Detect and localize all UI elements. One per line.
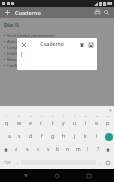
staticText: v [47,146,50,153]
button[interactable]: Lonsul de la semana [4,44,114,50]
button[interactable]: w [13,117,25,130]
staticText: 6 [63,114,65,117]
staticText: k [84,133,87,140]
button[interactable]: Recents [83,170,95,182]
button[interactable]: k [80,130,91,143]
staticText: ? [97,146,100,153]
button[interactable]: Add [3,8,12,17]
staticText: b [56,146,60,153]
button[interactable]: Emoji [103,157,113,168]
staticText: o [95,120,99,127]
button[interactable]: ?123 [1,157,14,168]
staticText: h [62,133,66,140]
staticText: Mostrar calendario [7,57,43,62]
button[interactable]: Delete [77,40,86,49]
button[interactable]: q [1,117,13,130]
button[interactable]: r [36,117,47,130]
staticText: j [74,133,76,140]
staticText: q [5,120,9,127]
staticText: n [66,146,70,153]
staticText: p [106,120,110,127]
staticText: m [76,146,81,153]
staticText: ?123 [4,161,11,165]
button[interactable]: s [14,130,25,143]
button[interactable]: p [102,117,113,130]
button[interactable]: Settings [109,109,112,112]
button[interactable]: g [47,130,58,143]
button[interactable]: ! [83,143,93,156]
staticText: Ambiente [7,39,26,44]
button[interactable]: h [58,130,69,143]
button[interactable]: f [36,130,47,143]
staticText: 5 [52,114,54,117]
button[interactable]: ? [93,143,103,156]
staticText: Vocé tambié permanente [7,33,55,38]
button[interactable]: Vocé tambié permanente [4,32,114,38]
staticText: w [17,120,21,127]
button[interactable]: o [91,117,102,130]
staticText: Cuaderno [40,41,64,48]
button[interactable]: Search [102,8,111,17]
staticText: 2 [18,114,20,117]
staticText: ! [87,146,89,153]
staticText: Día [4,21,13,28]
staticText: Intale sobre todos [7,51,42,56]
staticText: s [18,133,21,140]
button[interactable]: j [69,130,80,143]
staticText: Conferencia [7,63,30,68]
staticText: 7 [74,114,76,117]
button[interactable]: b [53,143,63,156]
button[interactable]: d [25,130,36,143]
staticText: 0 [107,114,109,117]
button[interactable]: z [11,143,22,156]
button[interactable]: t [47,117,58,130]
staticText: 1 [6,114,8,117]
button[interactable]: e [25,117,36,130]
button[interactable]: , [14,157,21,168]
button[interactable]: a [4,130,14,143]
button[interactable]: Intale sobre todos [4,50,114,56]
staticText: l [96,133,98,140]
button[interactable]: Shift [103,144,113,156]
button[interactable]: Home [51,170,63,182]
button[interactable]: i [80,117,91,130]
staticText: e [29,120,32,127]
staticText: Lonsul de la semana [7,45,46,50]
staticText: g [51,133,55,140]
button[interactable]: . [96,157,103,168]
button[interactable]: Shift [1,144,11,156]
button[interactable]: Ambiente [4,38,114,44]
staticText: , [17,159,19,166]
staticText: . [99,159,101,166]
button[interactable]: l [91,130,102,143]
staticText: t [52,120,54,127]
button[interactable]: Conferencia [4,62,114,68]
staticText: 8 [85,114,87,117]
button[interactable]: n [63,143,73,156]
staticText: a [8,133,11,140]
button[interactable]: Close [19,40,28,49]
button[interactable]: Mostrar calendario [4,56,114,62]
staticText: r [40,120,43,127]
staticText: c [37,146,40,153]
button[interactable]: Back [20,170,32,182]
button[interactable]: Print [93,8,102,17]
button[interactable]: x [22,143,33,156]
staticText: d [29,133,33,140]
staticText: y [62,120,65,127]
staticText: u [73,120,77,127]
staticText: z [15,146,18,153]
button[interactable]: m [73,143,83,156]
button[interactable]: Save [86,40,95,49]
staticText: 3 [30,114,32,117]
button[interactable]: Enter [105,133,113,141]
staticText: x [26,146,29,153]
staticText: Cuaderno [15,9,41,16]
button[interactable]: y [58,117,69,130]
staticText: 4 [41,114,43,117]
button[interactable]: c [33,143,43,156]
button[interactable]: u [69,117,80,130]
button[interactable]: v [43,143,53,156]
staticText: f [41,133,43,140]
